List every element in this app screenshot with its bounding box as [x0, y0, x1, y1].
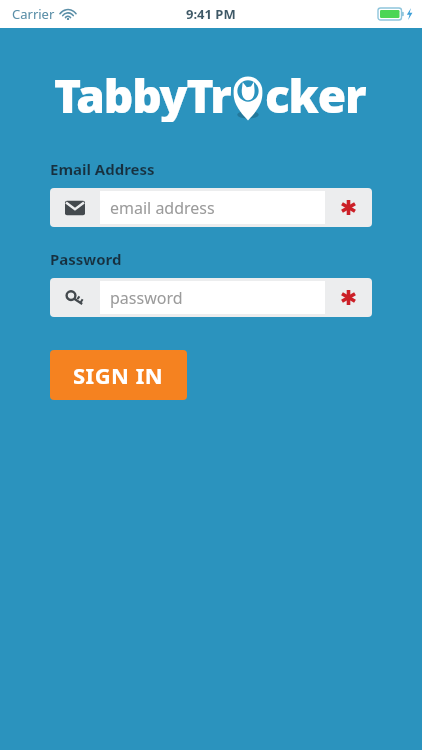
staticText: TabbyTr: [54, 64, 231, 122]
staticText: Email Address: [50, 159, 155, 179]
staticText: email address: [110, 197, 215, 219]
staticText: 9:41 PM: [186, 5, 236, 23]
button[interactable]: password: [50, 278, 372, 317]
button[interactable]: email address: [50, 188, 372, 227]
staticText: cker: [265, 64, 366, 122]
staticText: Carrier: [12, 5, 55, 23]
staticText: SIGN IN: [73, 360, 164, 390]
staticText: Password: [50, 249, 122, 269]
button[interactable]: SIGN IN: [50, 350, 187, 400]
staticText: password: [110, 287, 183, 309]
